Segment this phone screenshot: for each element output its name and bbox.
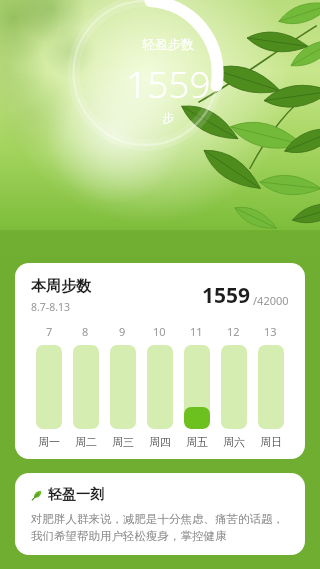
- staticText: 12: [227, 324, 240, 339]
- staticText: 周日: [260, 435, 282, 449]
- staticText: 9: [119, 324, 126, 339]
- staticText: 1559: [126, 58, 211, 108]
- staticText: 步: [162, 110, 174, 125]
- staticText: 周五: [186, 435, 208, 449]
- staticText: 周四: [149, 435, 171, 449]
- staticText: 对肥胖人群来说，减肥是十分焦虑、痛苦的话题，我们希望帮助用户轻松瘦身，掌控健康: [31, 512, 289, 543]
- staticText: /42000: [253, 293, 289, 308]
- staticText: 8: [82, 324, 89, 339]
- staticText: 轻盈一刻: [48, 486, 104, 504]
- staticText: 周三: [112, 435, 134, 449]
- staticText: 周一: [38, 435, 60, 449]
- staticText: 1559: [202, 281, 251, 310]
- staticText: 轻盈步数: [142, 36, 194, 52]
- other: Leaf: [31, 490, 42, 501]
- staticText: 本周步数: [31, 277, 91, 296]
- staticText: 7: [46, 324, 53, 339]
- staticText: 周六: [223, 435, 245, 449]
- button[interactable]: Leaf: [15, 473, 305, 555]
- button[interactable]: 本周步数: [15, 263, 305, 459]
- staticText: 周二: [75, 435, 97, 449]
- staticText: 11: [190, 324, 203, 339]
- staticText: 10: [153, 324, 166, 339]
- staticText: 8.7-8.13: [31, 300, 71, 314]
- staticText: 13: [264, 324, 277, 339]
